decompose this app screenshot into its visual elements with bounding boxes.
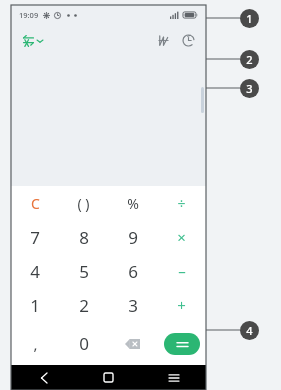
staticText: 2: [79, 294, 89, 317]
staticText: 1: [246, 11, 253, 26]
button[interactable]: [164, 333, 200, 355]
button[interactable]: 5: [59, 254, 108, 288]
staticText: ,: [33, 334, 38, 354]
button[interactable]: C: [11, 186, 59, 220]
staticText: 9: [128, 226, 138, 249]
button[interactable]: 2: [59, 288, 108, 322]
button[interactable]: 9: [108, 220, 157, 254]
button[interactable]: %: [108, 186, 157, 220]
staticText: ( ): [77, 194, 90, 213]
staticText: %: [127, 194, 139, 213]
button[interactable]: ,: [11, 322, 59, 365]
staticText: 7: [30, 226, 40, 249]
button[interactable]: 6: [108, 254, 157, 288]
button[interactable]: Back: [11, 365, 76, 390]
button[interactable]: Home: [76, 365, 141, 390]
staticText: 3: [128, 294, 138, 317]
staticText: 4: [246, 323, 253, 338]
staticText: 3: [246, 81, 253, 96]
staticText: 8: [79, 226, 89, 249]
staticText: ÷: [177, 194, 186, 213]
button[interactable]: Graph: [154, 31, 173, 50]
staticText: 5: [79, 260, 89, 283]
staticText: 6: [128, 260, 138, 283]
staticText: –: [178, 261, 186, 281]
staticText: 19:09: [19, 10, 39, 20]
staticText: 1: [30, 294, 40, 317]
button[interactable]: ×: [157, 220, 206, 254]
button[interactable]: Unit conversion: [19, 31, 46, 50]
button[interactable]: 3: [108, 288, 157, 322]
button[interactable]: History: [179, 31, 198, 50]
button[interactable]: Recents: [141, 365, 206, 390]
button[interactable]: +: [157, 288, 206, 322]
button[interactable]: ÷: [157, 186, 206, 220]
button[interactable]: 8: [59, 220, 108, 254]
button[interactable]: 7: [11, 220, 59, 254]
button[interactable]: Backspace: [108, 322, 157, 365]
button[interactable]: ( ): [59, 186, 108, 220]
staticText: ×: [177, 227, 186, 247]
button[interactable]: 4: [11, 254, 59, 288]
button[interactable]: –: [157, 254, 206, 288]
staticText: +: [177, 295, 186, 315]
staticText: 0: [79, 332, 89, 355]
staticText: C: [31, 194, 40, 213]
button[interactable]: 1: [11, 288, 59, 322]
staticText: 4: [30, 260, 40, 283]
staticText: 2: [246, 52, 253, 67]
button[interactable]: 0: [59, 322, 108, 365]
